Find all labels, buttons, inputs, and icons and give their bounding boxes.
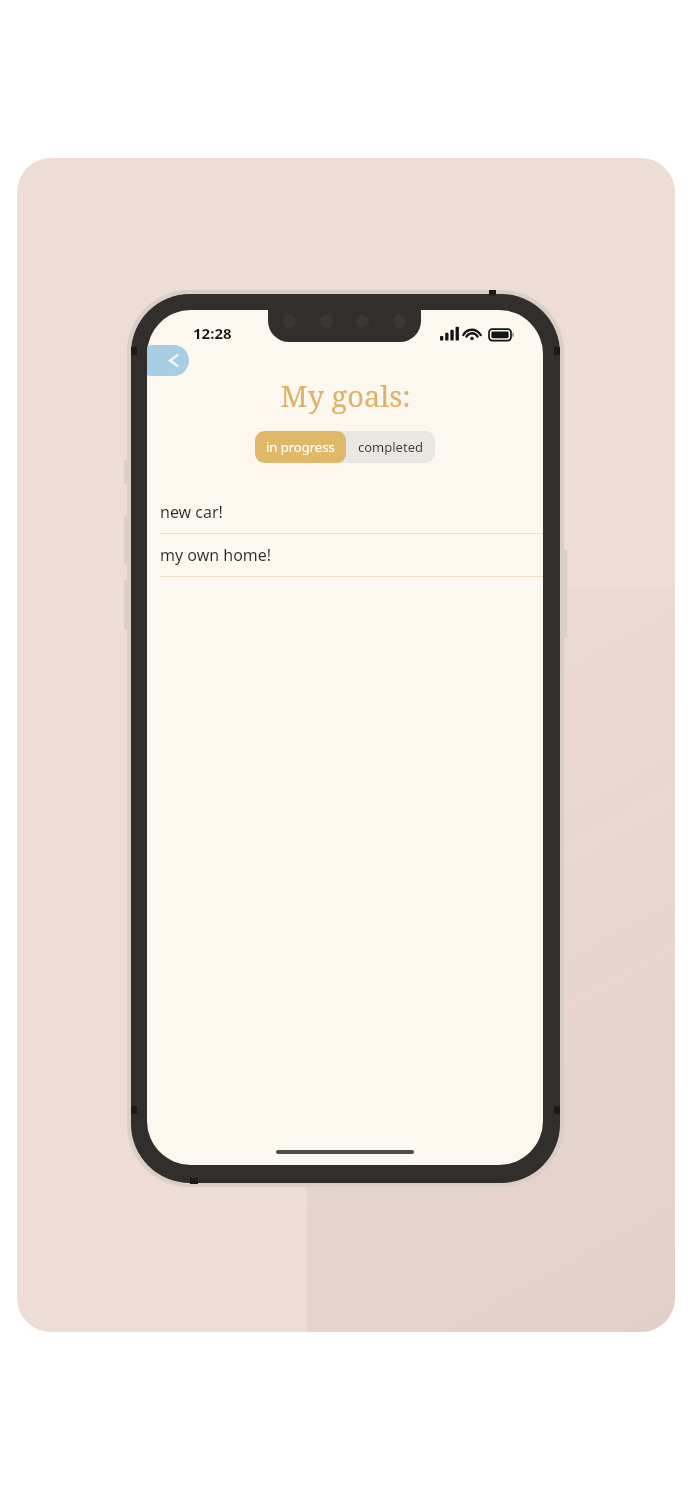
button[interactable]: Back [147,345,189,376]
staticText: in progress [266,438,335,456]
button[interactable]: completed [346,431,435,463]
staticText: My goals: [280,376,411,415]
button[interactable]: new car! [147,491,543,534]
button[interactable]: my own home! [147,534,543,577]
staticText: 12:28 [193,323,232,343]
staticText: completed [358,438,423,456]
staticText: new car! [160,501,223,523]
staticText: my own home! [160,544,272,566]
button[interactable]: in progress [255,431,346,463]
